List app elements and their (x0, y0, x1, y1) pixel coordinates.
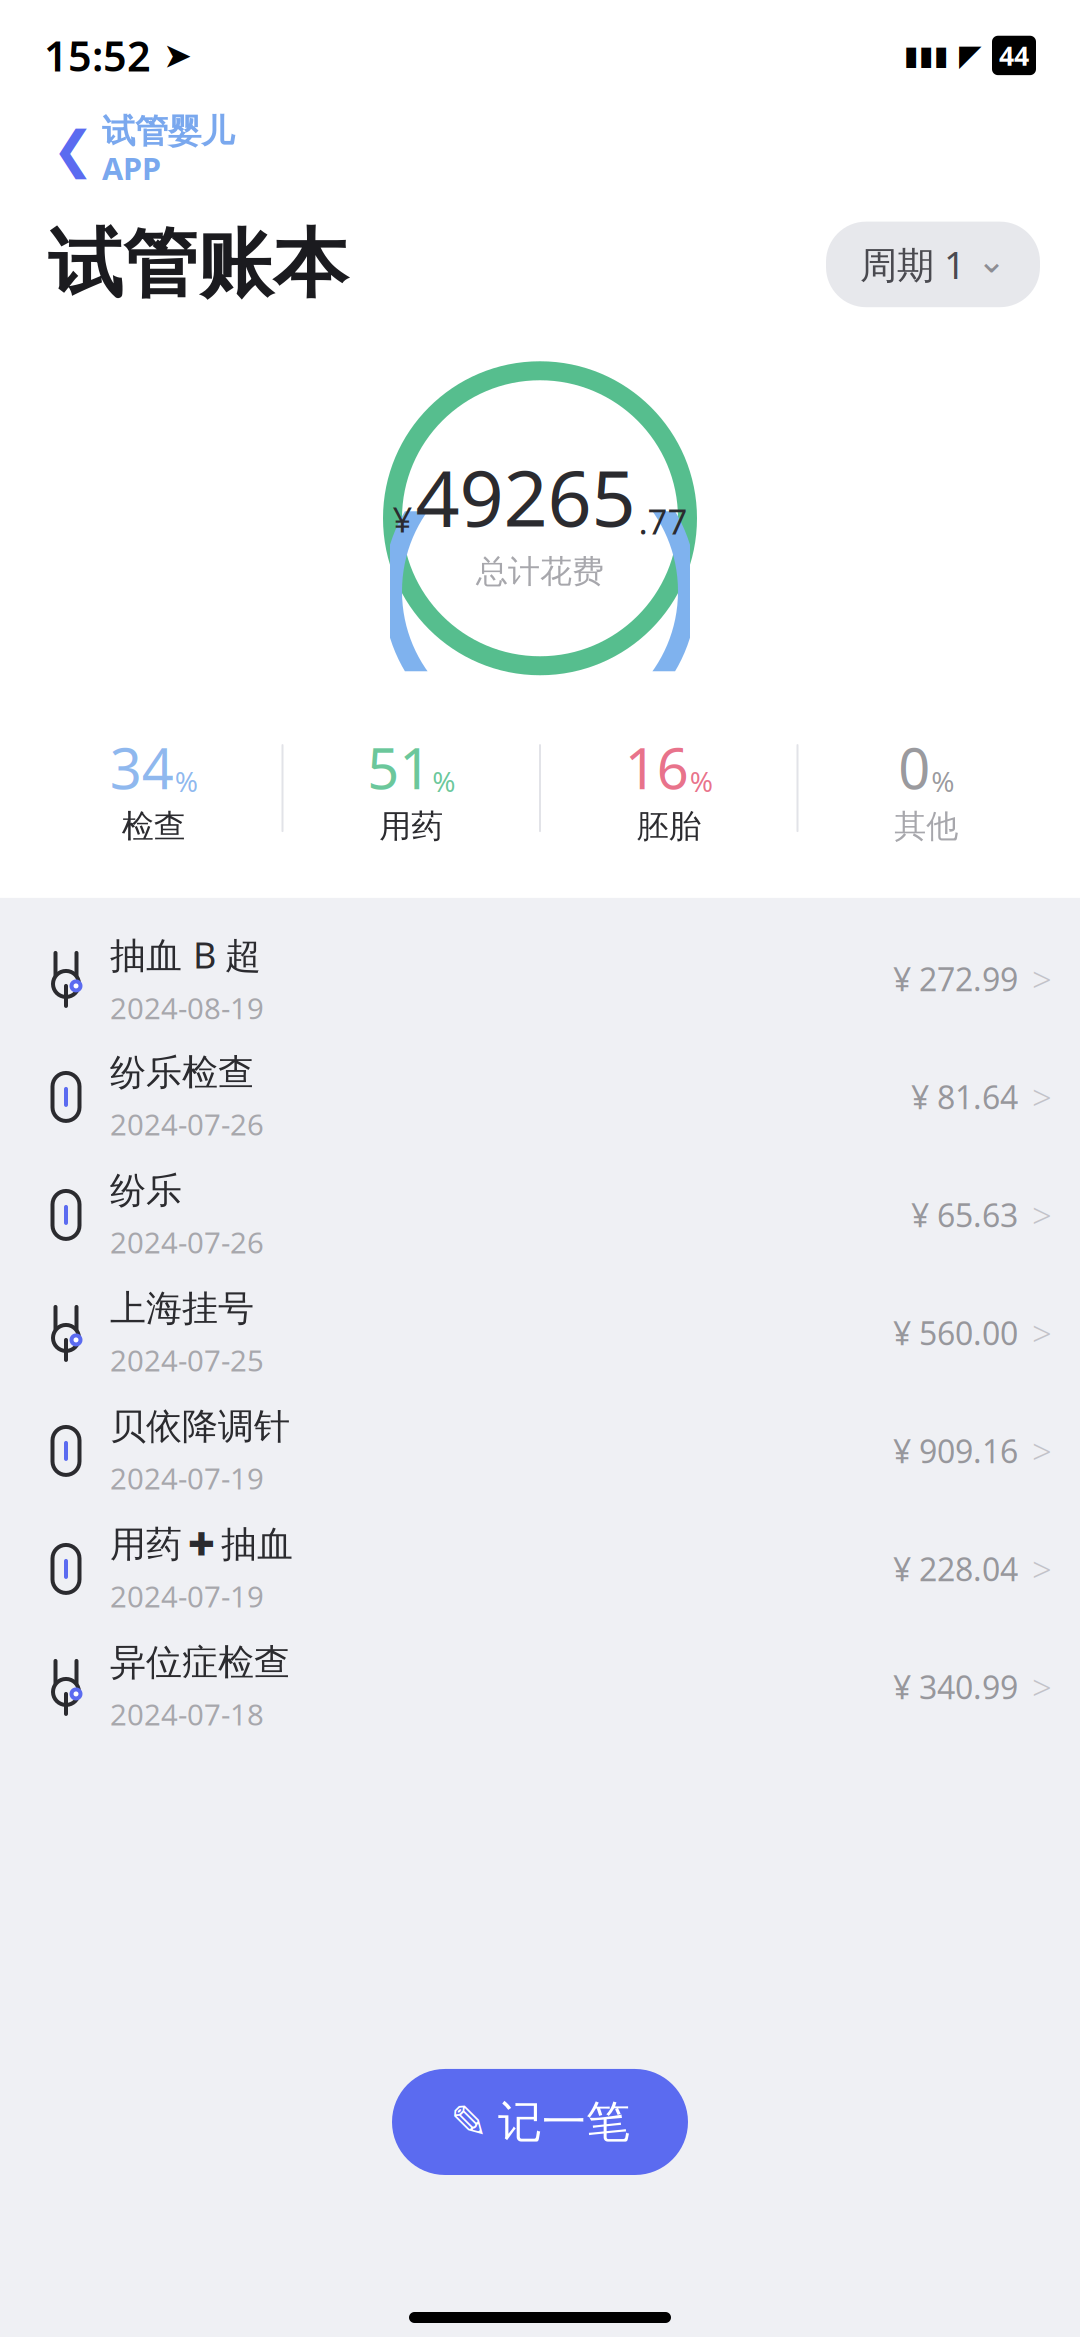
staticText: 记一笔 (498, 2095, 630, 2149)
staticText: 2024-07-19 (110, 1459, 264, 1498)
staticText: 2024-07-26 (110, 1223, 264, 1262)
staticText: 抽血 (221, 1522, 293, 1567)
staticText: ¥ 65.63 (911, 1194, 1018, 1236)
staticText: 纷乐检查 (110, 1050, 254, 1095)
staticText: 周期 1 (860, 240, 965, 289)
staticText: ⌄ (977, 241, 1006, 280)
button[interactable]: 纷乐检查 (0, 1038, 1080, 1156)
staticText: ➤ (163, 36, 192, 75)
staticText: % (931, 762, 954, 800)
button[interactable]: 纷乐 (0, 1156, 1080, 1274)
staticText: 34 (110, 730, 174, 805)
staticText: 44 (999, 38, 1029, 73)
staticText: ¥ (392, 496, 412, 542)
staticText: 检查 (122, 807, 186, 846)
button[interactable]: 周期 1 (826, 222, 1040, 307)
staticText: 2024-07-18 (110, 1695, 264, 1734)
button[interactable]: 上海挂号 (0, 1274, 1080, 1392)
staticText: 抽血 B 超 (110, 931, 261, 978)
staticText: 胚胎 (637, 807, 701, 846)
staticText: > (1032, 1664, 1052, 1710)
staticText: 贝依降调针 (110, 1404, 290, 1449)
staticText: 总计花费 (476, 552, 604, 591)
staticText: ✚ (188, 1526, 215, 1563)
staticText: 2024-07-26 (110, 1105, 264, 1144)
staticText: ¥ 340.99 (893, 1666, 1018, 1708)
staticText: 用药 (110, 1522, 182, 1567)
staticText: ❮ (52, 121, 94, 178)
staticText: ✎ (450, 2096, 488, 2148)
staticText: 用药 (379, 807, 443, 846)
staticText: 2024-08-19 (110, 988, 264, 1027)
staticText: ¥ 560.00 (893, 1312, 1018, 1354)
staticText: % (175, 762, 198, 800)
staticText: > (1032, 1310, 1052, 1356)
staticText: 上海挂号 (110, 1286, 254, 1331)
button[interactable]: 用药 (0, 1510, 1080, 1628)
staticText: 异位症检查 (110, 1640, 290, 1685)
staticText: % (432, 762, 455, 800)
staticText: 15:52 (44, 28, 151, 83)
staticText: 其他 (894, 807, 958, 846)
staticText: > (1032, 1192, 1052, 1238)
staticText: 51 (367, 730, 431, 805)
staticText: > (1032, 1546, 1052, 1592)
staticText: ¥ 81.64 (911, 1076, 1018, 1118)
staticText: 16 (625, 730, 689, 805)
staticText: > (1032, 1428, 1052, 1474)
staticText: ¥ 272.99 (893, 958, 1018, 1000)
staticText: > (1032, 956, 1052, 1002)
button[interactable]: 贝依降调针 (0, 1392, 1080, 1510)
button[interactable]: Back (42, 105, 244, 195)
staticText: 纷乐 (110, 1168, 182, 1213)
staticText: APP (102, 148, 161, 188)
button[interactable]: 抽血 B 超 (0, 920, 1080, 1038)
staticText: > (1032, 1074, 1052, 1120)
staticText: .77 (638, 498, 687, 544)
staticText: ¥ 228.04 (893, 1548, 1018, 1590)
staticText: ◤ (959, 39, 982, 72)
staticText: % (690, 762, 713, 800)
staticText: 2024-07-19 (110, 1577, 264, 1616)
staticText: 0 (898, 730, 930, 805)
staticText: ▮▮▮ (904, 40, 949, 71)
staticText: 2024-07-25 (110, 1341, 264, 1380)
staticText: ¥ 909.16 (893, 1430, 1018, 1472)
button[interactable]: ✎ (392, 2069, 688, 2175)
staticText: 试管账本 (48, 219, 348, 310)
staticText: 试管婴儿 (102, 111, 234, 152)
staticText: 49265 (415, 445, 635, 548)
button[interactable]: 异位症检查 (0, 1628, 1080, 1746)
